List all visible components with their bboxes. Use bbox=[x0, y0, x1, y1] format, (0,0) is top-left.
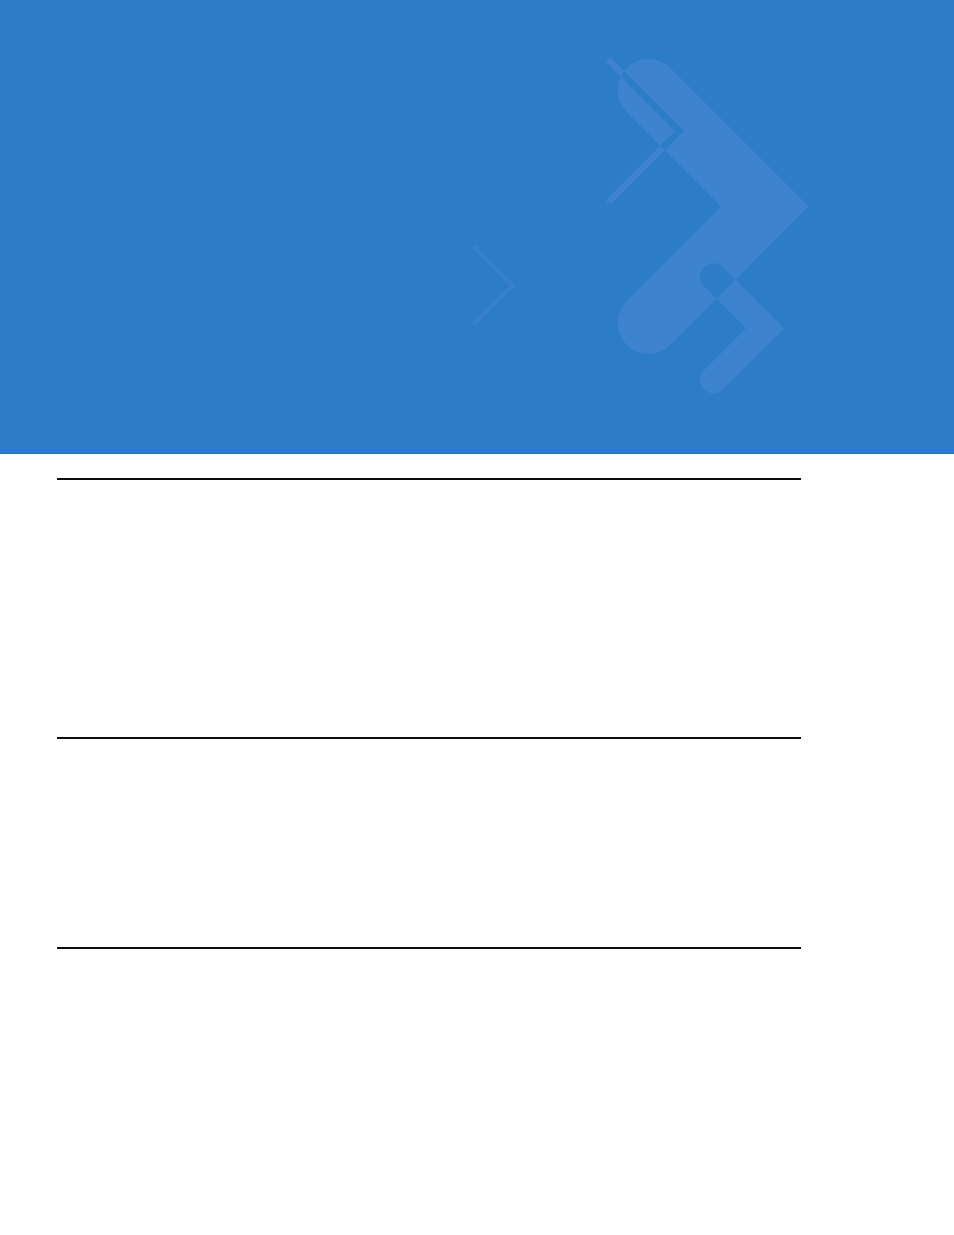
button[interactable]: List item 3 bbox=[0, 739, 954, 949]
button[interactable]: List item 2 bbox=[0, 480, 954, 739]
button[interactable]: List item 1 bbox=[0, 454, 954, 480]
other: Header artwork bbox=[0, 0, 954, 454]
